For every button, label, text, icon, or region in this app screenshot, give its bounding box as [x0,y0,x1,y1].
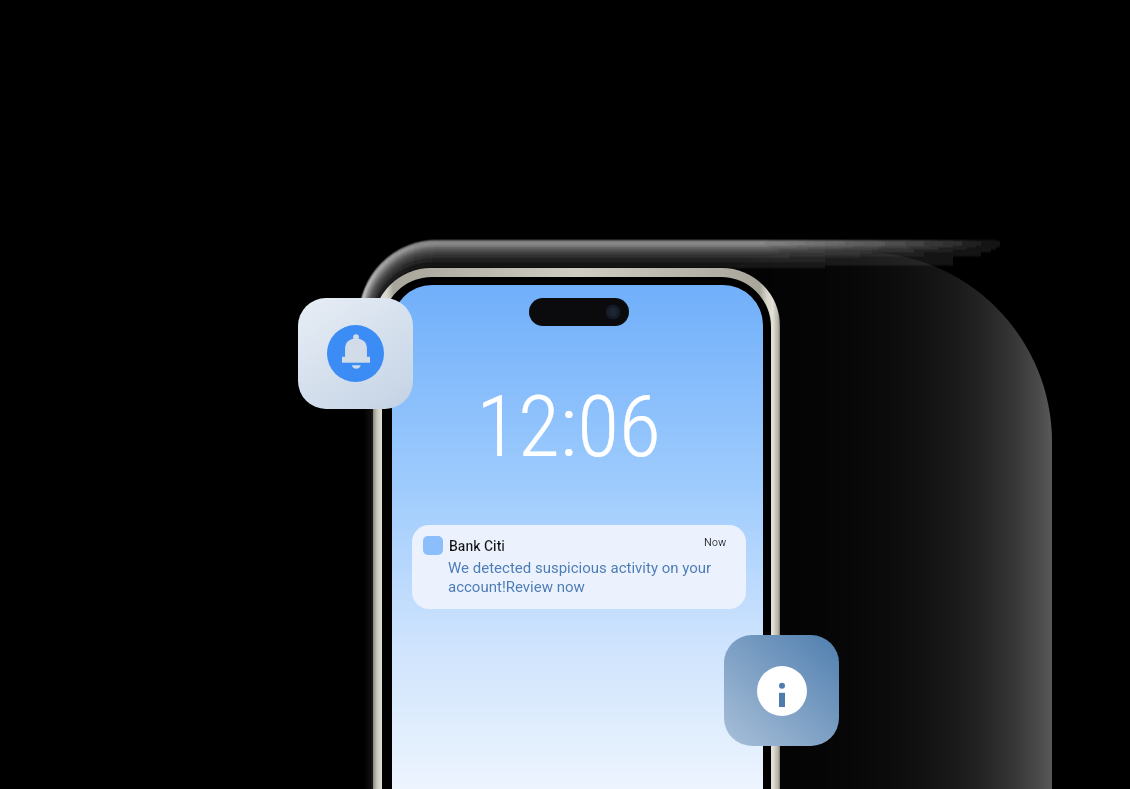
button[interactable]: Information [724,635,839,746]
staticText: We detected suspicious activity on your … [448,559,712,596]
staticText: 12:06 [392,376,754,477]
staticText: Bank Citi [449,538,505,554]
button[interactable]: Bank Citi [412,525,746,609]
button[interactable]: Notifications [298,298,413,409]
staticText: Now [704,536,727,549]
